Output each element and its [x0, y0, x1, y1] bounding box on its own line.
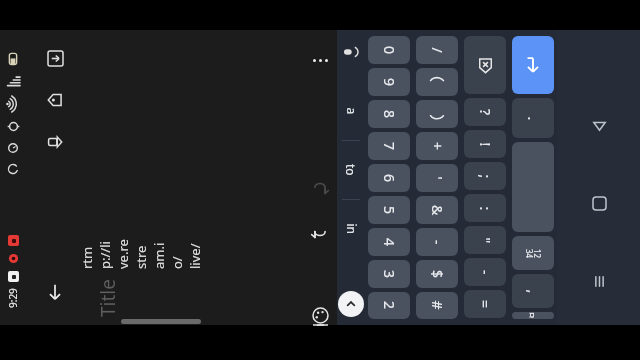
button[interactable]: / [416, 36, 458, 64]
staticText: Title [95, 279, 121, 317]
button[interactable]: - [464, 258, 506, 286]
button[interactable]: Recent apps [582, 264, 616, 298]
staticText: = [476, 300, 495, 309]
staticText: ABC [529, 312, 536, 319]
staticText: " [475, 237, 494, 243]
staticText: $ [428, 270, 447, 279]
staticText: + [428, 142, 447, 151]
staticText: ' [427, 176, 446, 180]
button[interactable]: = [464, 290, 506, 318]
button[interactable]: Expand suggestions [338, 291, 364, 317]
staticText: ? [476, 109, 495, 116]
button[interactable]: 8 [368, 100, 410, 128]
staticText: & [428, 205, 447, 216]
staticText: / [427, 47, 446, 53]
staticText: 5 [380, 206, 399, 215]
staticText: - [476, 270, 495, 275]
staticText: - [428, 240, 447, 245]
button[interactable]: Save and exit [41, 44, 69, 72]
button[interactable]: More options [306, 46, 334, 74]
button[interactable]: # [416, 292, 458, 319]
button[interactable]: 5 [368, 196, 410, 224]
button[interactable]: ! [464, 130, 506, 158]
button[interactable]: ; [464, 162, 506, 190]
staticText: ; [475, 174, 494, 178]
button[interactable]: " [464, 226, 506, 254]
staticText: 4 [380, 238, 399, 247]
button[interactable]: Label [41, 86, 69, 114]
staticText: a [343, 107, 359, 114]
staticText: . [523, 116, 542, 120]
button[interactable]: Voice input [339, 40, 363, 64]
staticText: in [343, 223, 359, 234]
button[interactable]: , [512, 274, 554, 308]
button[interactable]: Hide [40, 277, 70, 307]
button[interactable]: 4 [368, 228, 410, 256]
button[interactable]: ABC [512, 312, 554, 319]
button[interactable]: : [464, 194, 506, 222]
button[interactable]: to [338, 147, 364, 193]
staticText: : [475, 206, 494, 210]
button[interactable]: 12 34 [512, 236, 554, 270]
button[interactable] [416, 100, 458, 128]
staticText: 3 [380, 270, 399, 279]
button[interactable]: 0 [368, 36, 410, 64]
button[interactable]: Undo [306, 218, 334, 246]
button[interactable]: + [416, 132, 458, 160]
staticText: 8 [380, 110, 399, 119]
button[interactable]: Enter [512, 36, 554, 94]
staticText: 2 [380, 301, 399, 310]
staticText: 12 34 [523, 248, 542, 258]
button[interactable]: ? [464, 98, 506, 126]
staticText: 9:29 [6, 288, 20, 308]
staticText: , [523, 289, 542, 293]
button[interactable]: - [416, 228, 458, 256]
button[interactable]: 3 [368, 260, 410, 288]
button[interactable]: Backspace [464, 36, 506, 94]
button[interactable]: 2 [368, 292, 410, 319]
staticText: ! [475, 142, 494, 146]
staticText: 7 [380, 142, 399, 151]
button[interactable]: $ [416, 260, 458, 288]
button[interactable]: Color palette [306, 306, 334, 325]
staticText: # [427, 300, 446, 310]
button[interactable]: 6 [368, 164, 410, 192]
staticText: 9 [380, 78, 399, 87]
staticText: to [343, 164, 359, 176]
button[interactable]: Back [582, 108, 616, 142]
button[interactable]: Space [512, 142, 554, 232]
staticText: rtmp://live.restream.io/live/ [78, 239, 204, 269]
button[interactable]: a [338, 88, 364, 134]
button[interactable]: Announce [41, 128, 69, 156]
button[interactable] [416, 68, 458, 96]
button[interactable]: 7 [368, 132, 410, 160]
button[interactable]: & [416, 196, 458, 224]
button[interactable]: Redo [306, 174, 334, 202]
staticText: 0 [380, 46, 399, 55]
button[interactable]: . [512, 98, 554, 138]
staticText: 6 [380, 174, 399, 183]
button[interactable]: 9 [368, 68, 410, 96]
button[interactable]: in [338, 206, 364, 252]
button[interactable]: ' [416, 164, 458, 192]
button[interactable]: Home [582, 186, 616, 220]
